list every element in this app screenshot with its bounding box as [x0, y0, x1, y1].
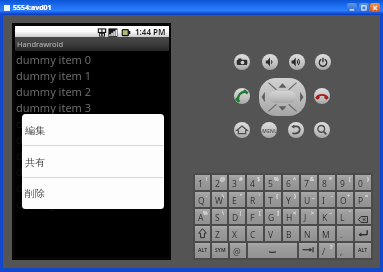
button[interactable]: A — [195, 209, 210, 224]
button[interactable]: 9 — [337, 175, 353, 190]
button[interactable]: 2 — [212, 175, 227, 190]
button[interactable]: dummy item 1 — [15, 67, 169, 83]
button[interactable]: E — [229, 192, 245, 207]
button[interactable]: T — [265, 192, 281, 207]
button[interactable]: Close — [370, 3, 380, 12]
button[interactable]: Z — [212, 226, 227, 241]
button[interactable]: Back — [288, 122, 304, 138]
staticText: 6 — [286, 178, 291, 190]
button[interactable]: ALT — [195, 243, 210, 258]
button[interactable]: Search — [314, 122, 330, 138]
button[interactable]: U — [301, 192, 317, 207]
staticText: M — [322, 229, 330, 241]
staticText: ALT — [198, 247, 208, 254]
staticText: SYM — [215, 247, 226, 254]
button[interactable]: 3 — [229, 175, 245, 190]
button[interactable] — [355, 209, 371, 224]
staticText: 9 — [340, 178, 345, 190]
staticText: & — [310, 175, 315, 182]
button[interactable]: 削除 — [22, 178, 164, 209]
button[interactable]: dummy item 8 — [15, 179, 169, 195]
button[interactable]: C — [247, 226, 263, 241]
staticText: H — [286, 212, 293, 224]
button[interactable]: P — [355, 192, 371, 207]
button[interactable]: 共有 — [22, 146, 164, 178]
button[interactable]: , — [337, 243, 353, 258]
button[interactable]: 0 — [355, 175, 371, 190]
button[interactable] — [299, 243, 317, 258]
button[interactable]: Minimize — [347, 3, 357, 12]
staticText: Handrawroid — [17, 39, 64, 49]
button[interactable] — [195, 226, 210, 241]
button[interactable]: Volume down — [262, 54, 278, 70]
button[interactable]: 5 — [265, 175, 281, 190]
button[interactable]: 1 — [195, 175, 210, 190]
button[interactable]: dummy item 4 — [15, 115, 169, 131]
button[interactable]: Power — [315, 54, 331, 70]
staticText: dummy item 9 — [16, 196, 92, 211]
button[interactable]: dummy item 9 — [15, 195, 169, 211]
staticText: } — [294, 192, 297, 199]
button[interactable]: / — [319, 243, 335, 258]
staticText: 4 — [250, 178, 255, 190]
button[interactable]: dummy item 7 — [15, 163, 169, 179]
button[interactable]: Camera — [234, 54, 250, 70]
button[interactable]: Home — [234, 122, 250, 138]
staticText: ] — [277, 209, 279, 216]
button[interactable]: Maximize — [359, 3, 369, 12]
button[interactable]: . — [337, 226, 353, 241]
button[interactable]: L — [337, 209, 353, 224]
button[interactable]: 8 — [319, 175, 335, 190]
button[interactable]: Call — [234, 88, 250, 104]
staticText: @ — [233, 246, 241, 258]
button[interactable]: H — [283, 209, 299, 224]
staticText: $ — [257, 175, 261, 182]
staticText: R — [250, 195, 256, 207]
button[interactable] — [248, 243, 297, 258]
button[interactable]: dummy item 0 — [15, 51, 169, 67]
button[interactable]: G — [265, 209, 281, 224]
button[interactable]: Menu — [261, 122, 277, 138]
button[interactable]: X — [229, 226, 245, 241]
button[interactable]: dummy item 2 — [15, 83, 169, 99]
button[interactable]: SYM — [212, 243, 228, 258]
button[interactable]: Q — [195, 192, 210, 207]
button[interactable]: I — [319, 192, 335, 207]
button[interactable]: dummy item 5 — [15, 131, 169, 147]
button[interactable]: Volume up — [289, 54, 305, 70]
button[interactable]: O — [337, 192, 353, 207]
staticText: X — [232, 229, 237, 241]
button[interactable]: M — [319, 226, 335, 241]
button[interactable]: @ — [230, 243, 246, 258]
button[interactable]: 6 — [283, 175, 299, 190]
button[interactable]: Select — [269, 91, 296, 103]
button[interactable]: 7 — [301, 175, 317, 190]
button[interactable]: D-pad — [259, 78, 306, 116]
button[interactable]: dummy item 6 — [15, 147, 169, 163]
button[interactable]: dummy item 3 — [15, 99, 169, 115]
button[interactable]: J — [301, 209, 317, 224]
button[interactable]: F — [247, 209, 263, 224]
button[interactable]: R — [247, 192, 263, 207]
button[interactable]: D — [229, 209, 245, 224]
staticText: { — [276, 192, 279, 199]
button[interactable]: K — [319, 209, 335, 224]
staticText: G — [268, 212, 275, 224]
staticText: P — [358, 195, 364, 207]
button[interactable] — [355, 226, 371, 241]
staticText: , — [340, 246, 343, 258]
button[interactable]: 編集 — [22, 114, 164, 146]
button[interactable]: W — [212, 192, 227, 207]
button[interactable]: ALT — [355, 243, 371, 258]
button[interactable]: End call — [314, 88, 330, 104]
button[interactable]: V — [265, 226, 281, 241]
staticText: . — [340, 229, 343, 241]
button[interactable]: S — [212, 209, 227, 224]
staticText: - — [331, 192, 333, 199]
button[interactable]: N — [301, 226, 317, 241]
button[interactable]: B — [283, 226, 299, 241]
staticText: ! — [206, 175, 208, 182]
button[interactable]: 4 — [247, 175, 263, 190]
button[interactable]: Y — [283, 192, 299, 207]
staticText: < — [293, 209, 297, 216]
